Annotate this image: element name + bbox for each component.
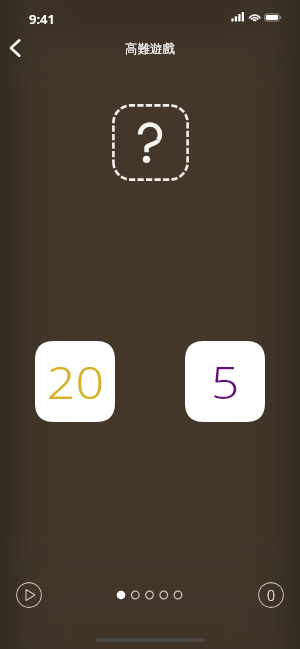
button[interactable]: Back (0, 33, 30, 63)
button[interactable]: 5 (185, 341, 265, 422)
button[interactable]: Unknown card (112, 104, 189, 181)
button[interactable]: Score (258, 582, 284, 608)
staticText: 9:41 (29, 10, 55, 28)
staticText: 20 (46, 352, 104, 412)
button[interactable]: 20 (35, 341, 115, 422)
staticText: 0 (267, 586, 275, 605)
staticText: 5 (210, 352, 240, 412)
staticText: 高難遊戲 (125, 41, 175, 57)
button[interactable]: Play (16, 582, 42, 608)
